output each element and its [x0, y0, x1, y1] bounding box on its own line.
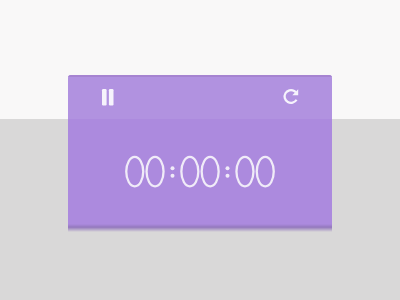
button[interactable]: [88, 77, 128, 117]
button[interactable]: [271, 76, 311, 116]
